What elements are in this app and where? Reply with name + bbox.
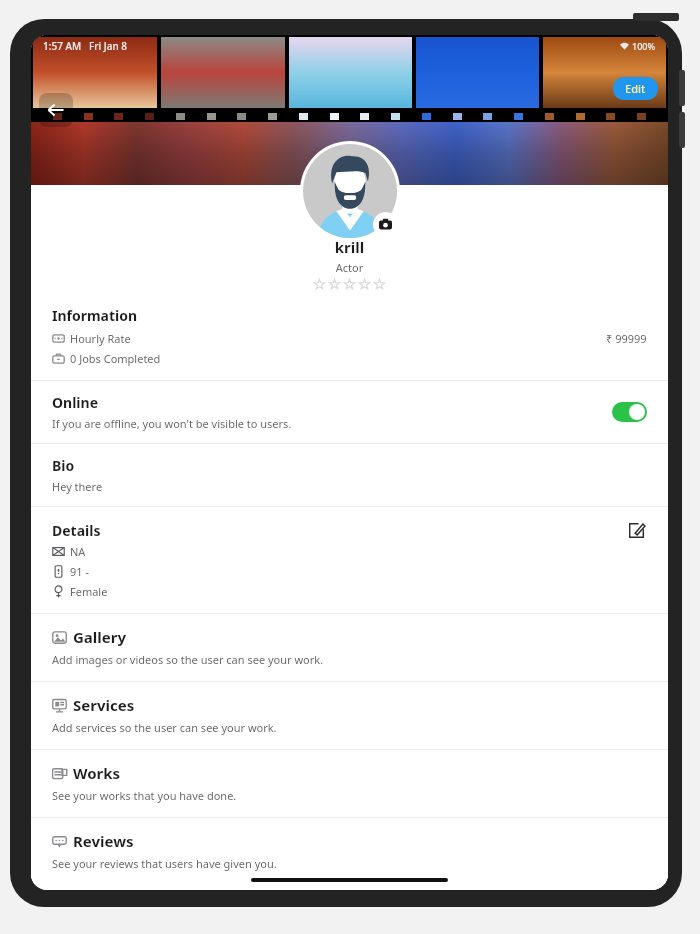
staticText: 91 - xyxy=(70,564,89,579)
staticText: 1:57 AM Fri Jan 8 xyxy=(43,39,128,53)
staticText: Works xyxy=(73,763,121,783)
staticText: Reviews xyxy=(73,831,134,851)
button[interactable]: Reviews xyxy=(31,818,668,885)
staticText: Female xyxy=(70,584,108,599)
button[interactable]: Edit details xyxy=(625,519,647,541)
staticText: NA xyxy=(70,544,86,559)
button[interactable]: Rate xyxy=(327,279,342,290)
staticText: If you are offline, you won't be visible… xyxy=(52,416,292,431)
button[interactable]: Bio xyxy=(31,444,668,506)
staticText: krill xyxy=(31,237,668,257)
button[interactable]: Works xyxy=(31,750,668,817)
staticText: See your works that you have done. xyxy=(52,788,237,803)
button[interactable]: Online xyxy=(31,381,668,443)
staticText: Add services so the user can see your wo… xyxy=(52,720,277,735)
staticText: Details xyxy=(52,521,101,540)
staticText: Services xyxy=(73,695,135,715)
staticText: Actor xyxy=(31,260,668,275)
button[interactable]: Online toggle xyxy=(612,402,647,422)
staticText: Hourly Rate xyxy=(70,331,131,346)
staticText: Hey there xyxy=(52,479,103,494)
staticText: Information xyxy=(52,306,138,325)
staticText: Online xyxy=(52,393,98,412)
button[interactable]: Services xyxy=(31,682,668,749)
staticText: Add images or videos so the user can see… xyxy=(52,652,324,667)
button[interactable]: Gallery xyxy=(31,614,668,681)
button[interactable]: Rate xyxy=(372,279,387,290)
staticText: 100% xyxy=(632,40,656,52)
staticText: Edit xyxy=(625,81,646,96)
button[interactable]: Back xyxy=(39,93,73,127)
button[interactable]: Rate xyxy=(342,279,357,290)
button[interactable]: Change profile photo xyxy=(373,212,398,237)
staticText: Bio xyxy=(52,456,75,475)
button[interactable]: Rate xyxy=(357,279,372,290)
staticText: ₹ 99999 xyxy=(606,331,647,346)
staticText: See your reviews that users have given y… xyxy=(52,856,277,871)
staticText: 0 Jobs Completed xyxy=(70,351,161,366)
button[interactable]: Rate xyxy=(312,279,327,290)
button[interactable]: Edit xyxy=(613,77,658,100)
staticText: Gallery xyxy=(73,627,127,647)
